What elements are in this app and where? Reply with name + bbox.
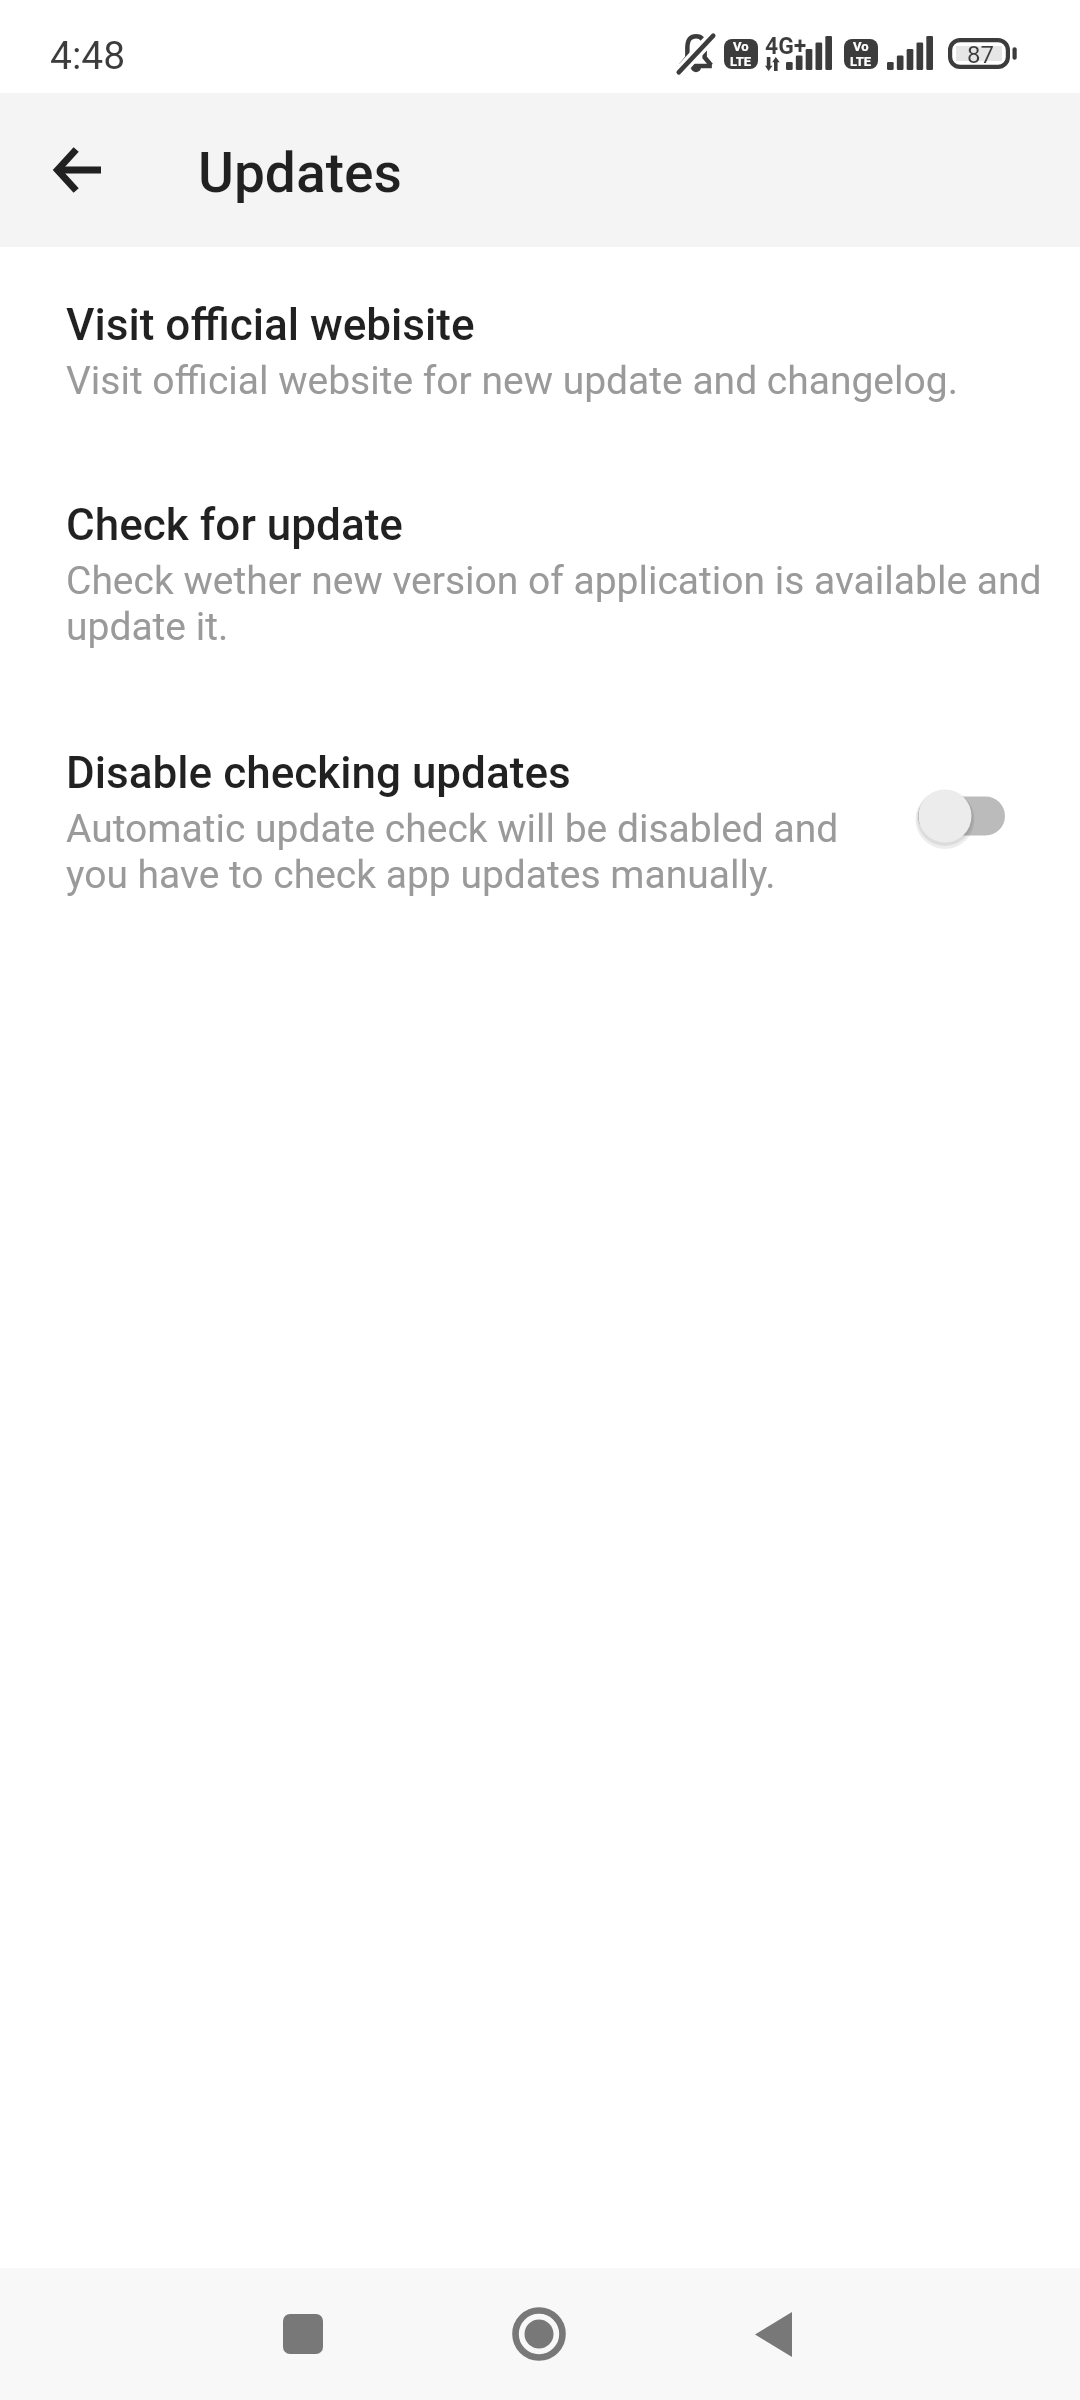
button[interactable]: Home <box>472 2268 606 2400</box>
button[interactable]: Visit official webisite <box>0 299 1080 404</box>
staticText: Check for update <box>66 499 403 551</box>
button[interactable]: Back <box>706 2268 840 2400</box>
button[interactable]: Check for update <box>0 499 1080 650</box>
staticText: LTE <box>850 54 872 69</box>
staticText: 4G+ <box>765 33 807 60</box>
staticText: Vo <box>853 39 869 54</box>
staticText: Updates <box>198 141 402 205</box>
staticText: 87 <box>967 41 994 69</box>
staticText: Check wether new version of application … <box>66 558 1052 650</box>
staticText: LTE <box>730 54 752 69</box>
button[interactable]: Recent apps <box>236 2268 370 2400</box>
button[interactable]: Disable checking updates toggle <box>900 776 1024 856</box>
staticText: Visit official webisite <box>66 299 475 351</box>
staticText: Automatic update check will be disabled … <box>66 806 866 898</box>
button[interactable]: Back <box>33 125 123 215</box>
staticText: 4:48 <box>50 33 126 79</box>
staticText: Visit official website for new update an… <box>66 358 958 404</box>
button[interactable]: Disable checking updates <box>0 747 1080 898</box>
staticText: Vo <box>733 39 749 54</box>
staticText: Disable checking updates <box>66 747 571 799</box>
